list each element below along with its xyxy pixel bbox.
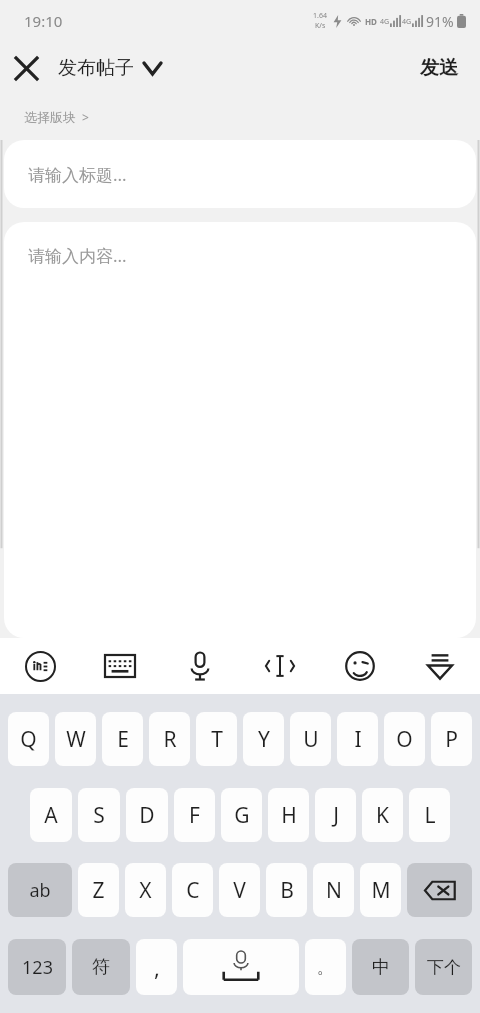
button[interactable]: Backspace (407, 863, 472, 917)
button[interactable]: T (196, 712, 237, 766)
button[interactable]: M (360, 863, 401, 917)
button[interactable]: Move cursor (240, 638, 320, 694)
staticText: W (66, 725, 86, 754)
staticText: Y (258, 725, 270, 754)
button[interactable]: J (315, 788, 356, 842)
staticText: X (139, 876, 152, 905)
staticText: 中 (372, 956, 390, 979)
staticText: 123 (22, 955, 53, 980)
staticText: Z (92, 876, 105, 905)
button[interactable]: O (384, 712, 425, 766)
button[interactable]: 请输入内容... (4, 222, 476, 638)
button[interactable]: Close (0, 42, 52, 94)
button[interactable]: X (125, 863, 166, 917)
staticText: K/s (315, 21, 326, 31)
button[interactable]: U (290, 712, 331, 766)
staticText: D (139, 801, 155, 830)
staticText: 选择版块 (24, 109, 76, 125)
staticText: > (82, 109, 89, 125)
staticText: 。 (317, 957, 334, 978)
button[interactable]: Emoji (320, 638, 400, 694)
staticText: U (303, 725, 319, 754)
staticText: S (93, 801, 105, 830)
staticText: M (371, 876, 391, 905)
staticText: C (186, 876, 200, 905)
staticText: 符 (92, 956, 110, 979)
staticText: B (280, 876, 294, 905)
staticText: ab (29, 878, 51, 903)
staticText: J (333, 801, 339, 830)
button[interactable]: F (174, 788, 215, 842)
staticText: V (233, 876, 246, 905)
button[interactable]: W (55, 712, 96, 766)
staticText: , (154, 952, 160, 982)
button[interactable]: N (313, 863, 354, 917)
staticText: N (326, 876, 342, 905)
button[interactable]: D (126, 788, 168, 842)
button[interactable]: B (266, 863, 307, 917)
button[interactable]: 。 (305, 939, 346, 995)
button[interactable]: G (221, 788, 262, 842)
button[interactable]: 选择版块 (0, 94, 480, 140)
staticText: A (44, 801, 58, 830)
button[interactable]: 符 (72, 939, 130, 995)
button[interactable]: H (268, 788, 309, 842)
staticText: E (117, 725, 129, 754)
button[interactable]: Input method (0, 638, 80, 694)
button[interactable]: Q (8, 712, 49, 766)
button[interactable]: R (149, 712, 190, 766)
button[interactable]: Space (183, 939, 299, 995)
staticText: L (424, 801, 436, 830)
button[interactable]: Z (78, 863, 119, 917)
button[interactable]: ab (8, 863, 72, 917)
button[interactable]: 发送 (398, 46, 480, 90)
button[interactable]: Voice input (160, 638, 240, 694)
button[interactable]: 中 (352, 939, 409, 995)
button[interactable]: Keyboard layout (80, 638, 160, 694)
staticText: Q (20, 725, 37, 754)
button[interactable]: P (431, 712, 472, 766)
button[interactable]: L (409, 788, 450, 842)
staticText: 4G (380, 17, 390, 27)
button[interactable]: , (136, 939, 177, 995)
button[interactable]: 下个 (415, 939, 472, 995)
staticText: HD (365, 16, 377, 27)
staticText: 请输入内容... (28, 244, 127, 267)
staticText: 下个 (427, 957, 461, 978)
staticText: F (189, 801, 200, 830)
button[interactable]: S (78, 788, 120, 842)
staticText: K (376, 801, 389, 830)
button[interactable]: C (172, 863, 213, 917)
staticText: 4G (402, 17, 412, 27)
button[interactable]: A (30, 788, 72, 842)
staticText: I (354, 725, 362, 754)
staticText: 请输入标题... (28, 163, 127, 186)
staticText: P (445, 725, 458, 754)
staticText: O (396, 725, 413, 754)
button[interactable]: E (102, 712, 143, 766)
button[interactable]: K (362, 788, 403, 842)
staticText: 1.64 (313, 11, 327, 21)
staticText: 发送 (420, 56, 458, 80)
staticText: 91% (426, 12, 454, 31)
button[interactable]: V (219, 863, 260, 917)
staticText: R (163, 725, 177, 754)
staticText: H (281, 801, 297, 830)
button[interactable]: 123 (8, 939, 66, 995)
button[interactable]: 请输入标题... (4, 140, 476, 208)
staticText: G (234, 801, 250, 830)
button[interactable]: Y (243, 712, 284, 766)
staticText: T (211, 725, 223, 754)
button[interactable]: I (337, 712, 378, 766)
staticText: 19:10 (24, 11, 63, 31)
staticText: 发布帖子 (58, 56, 134, 80)
button[interactable]: 发布帖子 (52, 48, 167, 88)
button[interactable]: Hide keyboard (400, 638, 480, 694)
